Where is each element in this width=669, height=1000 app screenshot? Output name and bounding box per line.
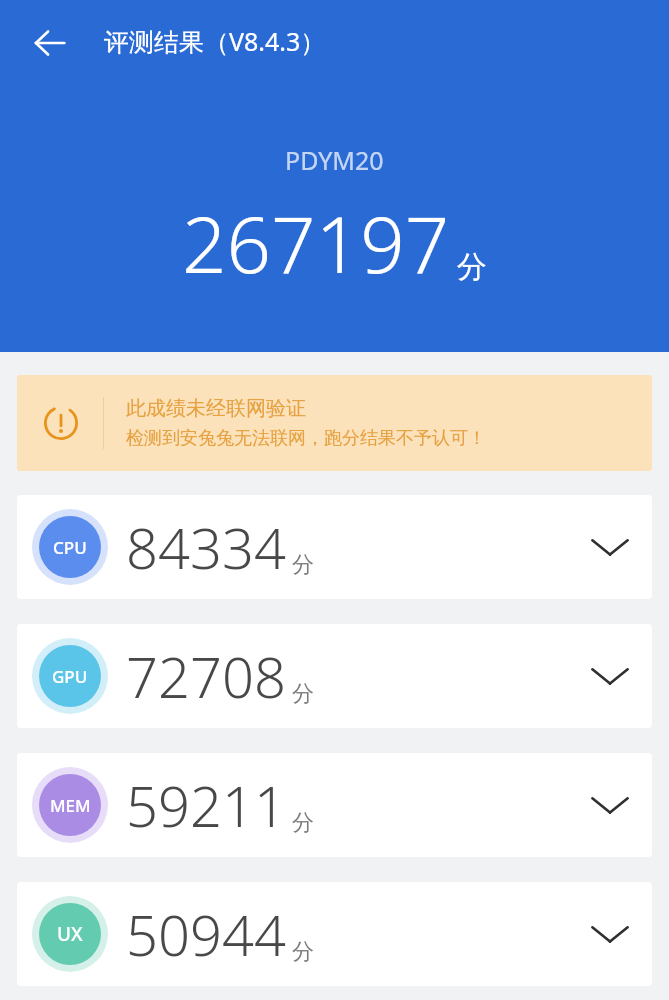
staticText: CPU <box>53 536 87 559</box>
staticText: 检测到安兔兔无法联网，跑分结果不予认可！ <box>126 427 486 450</box>
staticText: UX <box>57 921 83 947</box>
staticText: MEM <box>50 794 91 817</box>
staticText: 评测结果（V8.4.3） <box>104 24 326 58</box>
staticText: 此成绩未经联网验证 <box>126 396 306 421</box>
button[interactable]: Expand GPU details <box>578 644 642 708</box>
button[interactable]: UX <box>17 882 652 986</box>
button[interactable]: CPU <box>17 495 652 599</box>
button[interactable]: Expand MEM details <box>578 773 642 837</box>
staticText: 267197 <box>182 190 450 296</box>
staticText: 72708 <box>126 638 286 714</box>
staticText: GPU <box>52 665 88 688</box>
button[interactable]: Expand UX details <box>578 902 642 966</box>
button[interactable]: MEM <box>17 753 652 857</box>
staticText: 50944 <box>126 896 286 972</box>
staticText: 分 <box>292 680 314 708</box>
button[interactable]: Expand CPU details <box>578 515 642 579</box>
staticText: 分 <box>292 551 314 579</box>
button[interactable]: Back <box>24 17 76 69</box>
button[interactable]: 此成绩未经联网验证 <box>17 375 652 471</box>
staticText: 分 <box>457 248 487 286</box>
staticText: 84334 <box>126 509 286 585</box>
staticText: PDYM20 <box>285 143 384 177</box>
button[interactable]: GPU <box>17 624 652 728</box>
staticText: 分 <box>292 809 314 837</box>
staticText: 59211 <box>126 767 286 843</box>
staticText: 分 <box>292 938 314 966</box>
